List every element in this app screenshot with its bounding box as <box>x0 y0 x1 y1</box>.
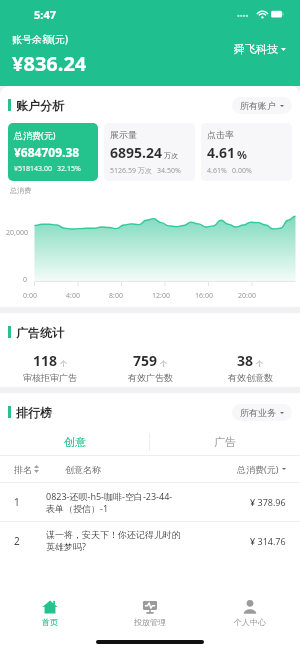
staticText: 所有账户 <box>240 100 276 111</box>
staticText: 总消费(元) <box>237 463 279 475</box>
staticText: 12:00 <box>152 291 195 301</box>
staticText: 展示量 <box>110 129 137 140</box>
staticText: 排行榜 <box>16 405 52 420</box>
button[interactable]: 个人中心 <box>200 591 300 635</box>
staticText: 总消费(元) <box>14 129 56 141</box>
staticText: 4:00 <box>66 291 109 301</box>
button[interactable]: 总消费(元) <box>8 123 98 181</box>
staticText: 有效广告数 <box>128 372 173 383</box>
button[interactable]: 118 <box>0 351 100 383</box>
button[interactable]: 2 <box>0 522 300 560</box>
button[interactable]: 759 <box>100 351 200 383</box>
button[interactable]: 投放管理 <box>100 591 200 635</box>
staticText: ¥684709.38 <box>14 144 80 160</box>
button[interactable]: 切换账户 舜飞科技 <box>230 38 290 60</box>
button[interactable]: 所有账户 <box>232 97 292 114</box>
staticText: 0:00 <box>23 291 66 301</box>
button[interactable]: 首页 <box>0 591 100 635</box>
staticText: 20,000 <box>6 228 28 238</box>
staticText: ¥ 378.96 <box>250 496 286 508</box>
button[interactable]: 展示量 <box>104 123 195 181</box>
staticText: 谋一将，安天下！你还记得儿时的 英雄梦吗? <box>46 529 181 553</box>
staticText: 6895.24 <box>110 143 162 162</box>
staticText: 2 <box>14 534 20 548</box>
staticText: ¥836.24 <box>12 50 87 77</box>
button[interactable]: 38 <box>200 351 300 383</box>
staticText: 0823-还呗-h5-咖啡-空白-23-44- 表单（授信）-1 <box>46 490 173 515</box>
button[interactable]: 点击率 <box>201 123 292 181</box>
staticText: 0.00% <box>232 166 252 175</box>
staticText: 118 <box>33 351 58 370</box>
staticText: 审核拒审广告 <box>23 372 77 383</box>
staticText: 32.15% <box>57 164 81 174</box>
staticText: 舜飞科技 <box>234 42 278 56</box>
staticText: 首页 <box>42 617 58 627</box>
staticText: 总消费 <box>10 186 31 195</box>
staticText: 0 <box>23 275 28 285</box>
staticText: 16:00 <box>195 291 238 301</box>
button[interactable]: 广告 <box>150 429 300 455</box>
staticText: 投放管理 <box>134 617 166 627</box>
staticText: 1 <box>14 495 20 509</box>
button[interactable]: 1 <box>0 483 300 521</box>
staticText: 4.61 <box>207 143 235 162</box>
staticText: 759 <box>133 351 158 370</box>
staticText: ¥ 314.76 <box>250 535 286 547</box>
button[interactable]: 所有业务 <box>232 404 292 421</box>
staticText: 广告统计 <box>16 325 64 340</box>
staticText: 20:00 <box>238 291 281 301</box>
staticText: % <box>237 147 247 162</box>
staticText: 账号余额(元) <box>12 32 68 46</box>
staticText: 创意 <box>64 435 86 449</box>
staticText: 点击率 <box>207 129 234 140</box>
staticText: 个 <box>256 359 263 368</box>
staticText: 万次 <box>164 151 178 160</box>
staticText: 个人中心 <box>234 617 266 627</box>
staticText: 5:47 <box>34 7 56 22</box>
staticText: 所有业务 <box>240 407 276 418</box>
staticText: 个 <box>60 359 67 368</box>
staticText: ¥518143.00 <box>14 164 52 174</box>
button[interactable]: 总消费(元) <box>237 463 286 475</box>
staticText: 有效创意数 <box>228 372 273 383</box>
staticText: 排名 <box>14 464 32 475</box>
staticText: 个 <box>160 359 167 368</box>
staticText: 创意名称 <box>65 464 101 475</box>
staticText: 5126.59 万次 <box>110 166 152 175</box>
staticText: 8:00 <box>109 291 152 301</box>
staticText: 34.50% <box>157 166 181 175</box>
staticText: 38 <box>237 351 254 370</box>
staticText: 4.61% <box>207 166 227 175</box>
button[interactable]: 创意 <box>0 429 149 455</box>
staticText: 广告 <box>214 435 236 449</box>
staticText: 账户分析 <box>16 98 64 113</box>
